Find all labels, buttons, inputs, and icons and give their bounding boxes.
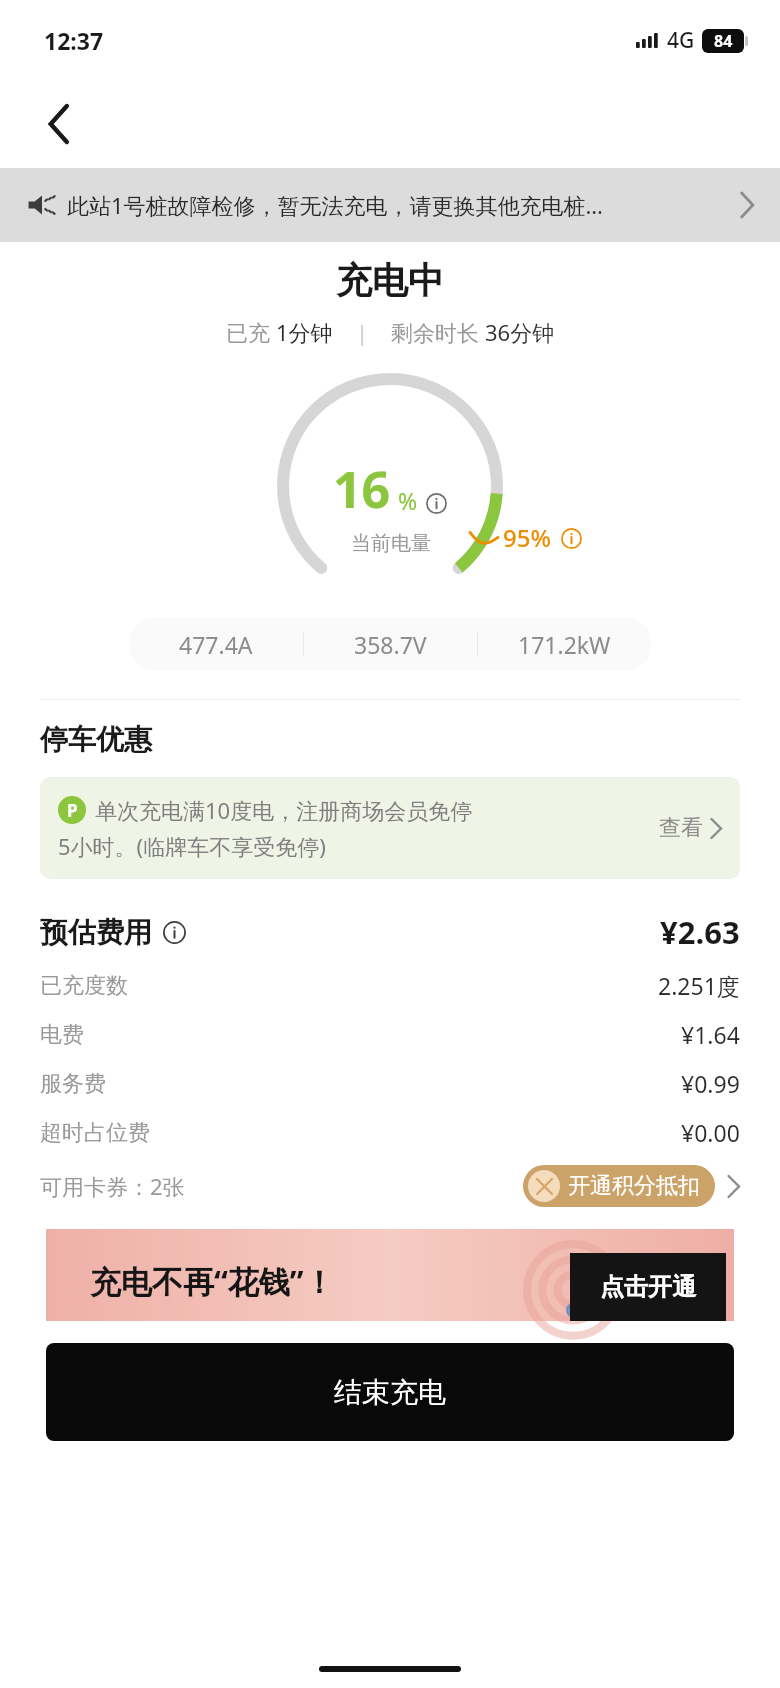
staticText: 可用卡券：2张 [40, 1171, 185, 1201]
staticText: 358.7V [354, 629, 427, 660]
staticText: 12:37 [44, 25, 104, 56]
staticText: 结束充电 [334, 1375, 446, 1410]
staticText: 已充度数 [40, 972, 128, 1000]
staticText: P [67, 799, 78, 822]
staticText: 电费 [40, 1021, 84, 1049]
button[interactable]: 充电不再“花钱”！ [46, 1229, 734, 1321]
staticText: 477.4A [179, 629, 253, 660]
staticText: 2.251度 [658, 970, 740, 1001]
staticText: 超时占位费 [40, 1119, 150, 1147]
staticText: 95% [503, 521, 551, 554]
button[interactable]: 充电上限说明 [559, 526, 583, 550]
staticText: 充电中 [336, 258, 444, 303]
staticText: 1分钟 [276, 317, 333, 347]
button[interactable]: 电量说明 [424, 491, 448, 515]
button[interactable]: 点击开通 [570, 1253, 726, 1321]
staticText: ¥2.63 [660, 911, 740, 953]
button[interactable]: 费用说明 [161, 919, 187, 945]
staticText: ¥1.64 [681, 1019, 740, 1050]
staticText: 服务费 [40, 1070, 106, 1098]
staticText: 84 [714, 30, 733, 52]
staticText: 已充 [226, 317, 276, 347]
staticText: 4G [667, 26, 695, 55]
staticText: 5小时。(临牌车不享受免停) [58, 831, 326, 861]
staticText: 36分钟 [485, 317, 555, 347]
staticText: 开通积分抵扣 [568, 1172, 700, 1200]
staticText: 停车优惠 [40, 722, 152, 757]
staticText: 此站1号桩故障检修，暂无法充电，请更换其他充电桩… [67, 190, 603, 220]
staticText: 查看 [659, 814, 703, 842]
staticText: 充电不再“花钱”！ [90, 1260, 335, 1302]
staticText: ¥0.00 [681, 1117, 740, 1148]
staticText: 单次充电满10度电，注册商场会员免停 [95, 795, 473, 825]
staticText: ¥0.99 [681, 1068, 740, 1099]
button[interactable]: Back [32, 97, 86, 151]
staticText: 当前电量 [351, 531, 431, 556]
button[interactable]: P [40, 777, 740, 879]
staticText: 16 [333, 455, 391, 523]
button[interactable]: 结束充电 [46, 1343, 734, 1441]
staticText: % [398, 485, 418, 516]
staticText: 171.2kW [518, 629, 611, 660]
staticText: | [333, 317, 391, 347]
staticText: 点击开通 [600, 1272, 696, 1302]
button[interactable]: 此站1号桩故障检修，暂无法充电，请更换其他充电桩… [0, 168, 780, 242]
button[interactable]: 可用卡券：2张 [40, 1157, 740, 1215]
staticText: 预估费用 [40, 915, 152, 950]
staticText: 剩余时长 [391, 317, 485, 347]
